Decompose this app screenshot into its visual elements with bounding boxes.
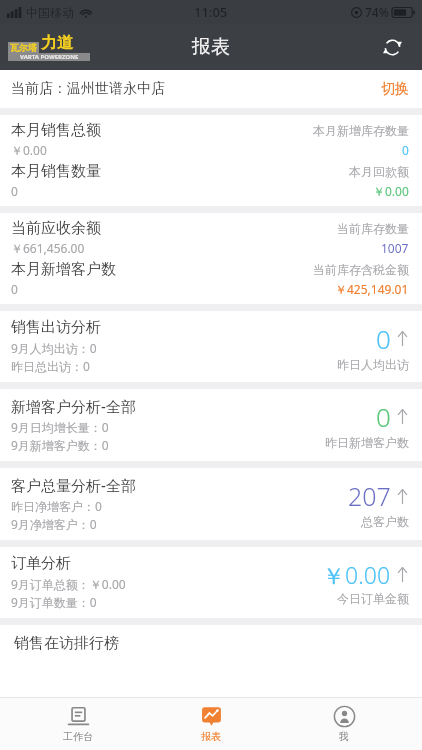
staticText: 本月新增客户数	[11, 260, 313, 279]
staticText: 当前店：温州世谱永中店	[11, 80, 165, 98]
staticText: 昨日净增客户：0	[11, 498, 102, 514]
button[interactable]: 销售出访分析	[0, 311, 422, 382]
staticText: 工作台	[63, 730, 93, 743]
staticText: 0	[11, 183, 373, 199]
staticText: 销售出访分析	[11, 318, 101, 337]
staticText: 今日订单金额	[337, 591, 409, 606]
staticText: 0	[376, 399, 391, 434]
staticText: 总客户数	[361, 514, 409, 529]
staticText: 9月新增客户数：0	[11, 437, 109, 453]
staticText: 9月日均增长量：0	[11, 419, 109, 435]
staticText: 本月新增库存数量	[313, 123, 409, 138]
staticText: 本月销售数量	[11, 162, 349, 181]
button[interactable]: 刷新	[374, 29, 410, 65]
staticText: 订单分析	[11, 554, 71, 573]
staticText: 新增客户分析-全部	[11, 396, 136, 416]
staticText: 力道	[41, 33, 73, 53]
staticText: 当前库存含税金额	[313, 262, 409, 277]
staticText: 0	[11, 281, 335, 297]
staticText: 当前应收余额	[11, 219, 337, 238]
button[interactable]: 报表	[156, 698, 266, 750]
button[interactable]: 当前店：温州世谱永中店	[0, 70, 422, 108]
staticText: 切换	[381, 80, 409, 98]
button[interactable]: 订单分析	[0, 547, 422, 618]
staticText: 报表	[192, 35, 230, 59]
staticText: 9月净增客户：0	[11, 516, 97, 532]
staticText: ￥425,149.01	[335, 281, 409, 297]
staticText: 9月订单总额：￥0.00	[11, 576, 126, 592]
staticText: ￥0.00	[11, 142, 402, 158]
staticText: 客户总量分析-全部	[11, 475, 136, 495]
staticText: 中国移动	[26, 5, 74, 20]
button[interactable]: 新增客户分析-全部	[0, 389, 422, 461]
button[interactable]: 客户总量分析-全部	[0, 468, 422, 540]
staticText: ￥0.00	[322, 559, 391, 590]
staticText: 1007	[381, 240, 409, 256]
staticText: 昨日新增客户数	[325, 435, 409, 450]
staticText: 当前库存数量	[337, 221, 409, 236]
button[interactable]: 工作台	[23, 698, 133, 750]
button[interactable]: 我	[289, 698, 399, 750]
staticText: ￥0.00	[373, 183, 409, 199]
staticText: 本月销售总额	[11, 121, 313, 140]
staticText: 9月订单数量：0	[11, 594, 97, 610]
button[interactable]: 本月销售总额	[0, 115, 422, 206]
staticText: 207	[348, 479, 391, 513]
button[interactable]: 当前应收余额	[0, 213, 422, 304]
staticText: 74%	[365, 4, 389, 20]
staticText: 本月回款额	[349, 164, 409, 179]
staticText: 销售在访排行榜	[14, 634, 119, 653]
staticText: 报表	[201, 730, 221, 743]
staticText: 11:05	[194, 3, 228, 21]
staticText: ￥661,456.00	[11, 240, 381, 256]
staticText: 昨日人均出访	[337, 357, 409, 372]
staticText: 昨日总出访：0	[11, 358, 90, 374]
staticText: 9月人均出访：0	[11, 340, 97, 356]
staticText: VARTA POWERZONE	[20, 53, 79, 61]
staticText: 0	[402, 142, 409, 158]
staticText: 我	[339, 730, 349, 743]
staticText: 0	[376, 321, 391, 356]
staticText: 瓦尔塔	[10, 42, 37, 53]
